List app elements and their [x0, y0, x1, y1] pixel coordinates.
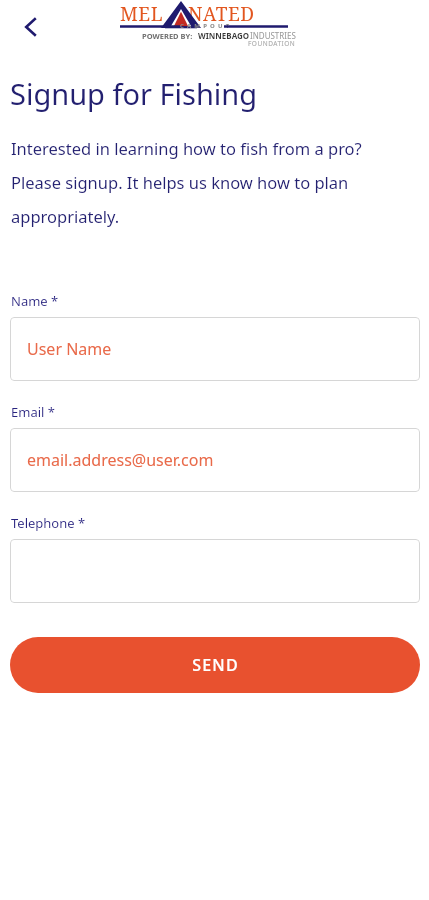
staticText: Name * — [11, 292, 59, 310]
staticText: User Name — [27, 338, 112, 360]
staticText: NATED — [188, 1, 255, 27]
button[interactable] — [10, 539, 420, 603]
staticText: SEND — [192, 654, 239, 676]
staticText: email.address@user.com — [27, 449, 214, 471]
button[interactable]: SEND — [10, 637, 420, 693]
button[interactable]: email.address@user.com — [10, 428, 420, 492]
button[interactable]: User Name — [10, 317, 420, 381]
staticText: INDUSTRIES — [250, 30, 296, 41]
staticText: Signup for Fishing — [10, 74, 258, 113]
staticText: Interested in learning how to fish from … — [11, 137, 411, 228]
staticText: POWERED BY: — [142, 31, 193, 41]
staticText: Email * — [11, 403, 55, 421]
staticText: Telephone * — [11, 514, 86, 532]
button[interactable]: Back — [10, 6, 52, 48]
staticText: C A M P O U T — [180, 22, 230, 30]
staticText: WINNEBAGO — [198, 30, 250, 41]
staticText: MEL — [120, 1, 163, 27]
staticText: FOUNDATION — [248, 39, 296, 48]
